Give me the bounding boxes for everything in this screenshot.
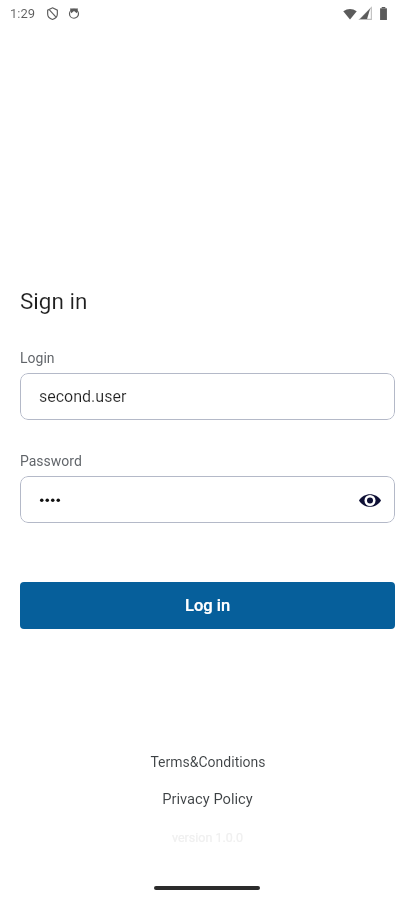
staticText: Privacy Policy xyxy=(162,790,253,807)
staticText: version 1.0.0 xyxy=(172,830,244,845)
staticText: Login xyxy=(20,350,55,366)
staticText: Log in xyxy=(185,596,231,615)
staticText: Terms&Conditions xyxy=(150,754,266,770)
button[interactable]: Show password xyxy=(355,485,385,515)
button[interactable]: Terms&Conditions xyxy=(138,750,278,774)
button[interactable]: Show password xyxy=(20,476,395,523)
staticText: Sign in xyxy=(20,288,88,314)
button[interactable]: second.user xyxy=(20,373,395,420)
button[interactable]: Privacy Policy xyxy=(150,786,265,811)
staticText: Password xyxy=(20,453,82,469)
button[interactable]: Log in xyxy=(20,582,395,629)
staticText: 1:29 xyxy=(10,6,36,21)
staticText: second.user xyxy=(39,387,127,406)
